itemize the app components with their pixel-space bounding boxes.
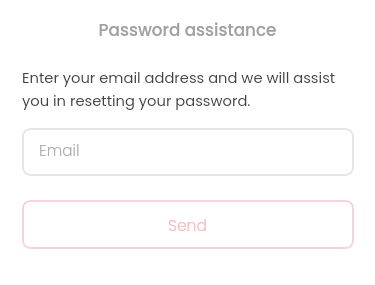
staticText: Email: [39, 140, 80, 161]
staticText: Enter your email address and we will ass…: [22, 68, 353, 111]
button[interactable]: Send: [22, 200, 354, 249]
staticText: Password assistance: [0, 18, 375, 42]
button[interactable]: Email address input field: [22, 128, 354, 176]
staticText: Send: [168, 215, 208, 237]
